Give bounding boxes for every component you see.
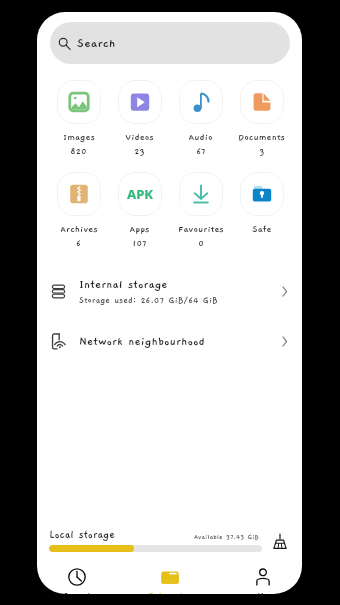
staticText: Available 37.43 GiB [194, 533, 259, 541]
staticText: Archives [60, 224, 98, 235]
button[interactable]: Recent [44, 568, 110, 594]
button[interactable]: APK [109, 172, 170, 248]
staticText: Audio [188, 132, 213, 143]
staticText: 23 [134, 146, 145, 156]
staticText: APK [127, 185, 154, 203]
button[interactable]: Favourites [170, 172, 231, 248]
staticText: Me [257, 590, 269, 594]
staticText: Local storage [49, 529, 115, 541]
staticText: Documents [238, 132, 285, 143]
staticText: Favourites [178, 224, 224, 235]
staticText: Internal storage [79, 278, 168, 291]
button[interactable]: Documents [231, 80, 292, 156]
button[interactable]: Internal storage [37, 265, 302, 318]
staticText: 67 [196, 146, 206, 156]
button[interactable]: Categories [137, 568, 203, 594]
staticText: Images [63, 132, 95, 143]
staticText: 3 [259, 146, 265, 156]
staticText: 107 [132, 238, 147, 248]
button[interactable]: Safe [231, 172, 292, 235]
button[interactable]: Videos [109, 80, 170, 156]
staticText: Network neighbourhood [79, 335, 205, 348]
staticText: Videos [125, 132, 154, 143]
button[interactable]: Archives [48, 172, 109, 248]
button[interactable]: Search [50, 22, 290, 64]
staticText: Apps [129, 224, 150, 235]
staticText: 0 [198, 238, 204, 248]
staticText: Storage used: 26.07 GiB/64 GiB [79, 295, 218, 305]
button[interactable]: Me [230, 568, 296, 594]
button[interactable]: Audio [170, 80, 231, 156]
staticText: 6 [76, 238, 81, 248]
button[interactable]: Clean up storage [269, 530, 291, 552]
staticText: Recent [63, 590, 91, 594]
button[interactable]: Images [48, 80, 109, 156]
staticText: 820 [70, 146, 87, 156]
staticText: Categories [148, 590, 192, 594]
staticText: Search [77, 36, 116, 50]
staticText: Safe [252, 224, 272, 235]
button[interactable]: Network neighbourhood [37, 318, 302, 364]
